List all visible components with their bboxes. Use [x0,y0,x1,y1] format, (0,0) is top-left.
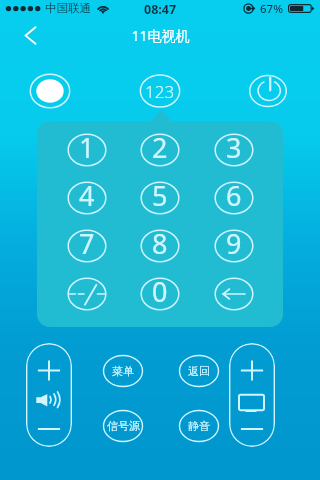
staticText: 08:47 [144,1,177,18]
staticText: 9 [226,226,242,262]
button[interactable]: 1 [64,130,110,170]
button[interactable]: 5 [137,178,183,218]
staticText: 3 [226,130,242,166]
button[interactable]: 7 [64,226,110,266]
button[interactable]: 2 [137,130,183,170]
staticText: 7 [79,226,95,262]
button[interactable]: 3 [211,130,257,170]
staticText: 中国联通 [45,1,91,15]
button[interactable]: Power [246,71,290,111]
button[interactable] [211,274,257,314]
staticText: 0 [152,274,168,310]
button[interactable]: 6 [211,178,257,218]
button[interactable]: 8 [137,226,183,266]
button[interactable]: Volume [26,343,72,447]
staticText: 123 [145,80,175,103]
staticText: 4 [79,178,95,214]
button[interactable]: Channel [229,343,275,447]
staticText: 1 [79,130,95,166]
button[interactable]: 静音 [176,406,222,446]
staticText: 5 [152,178,168,214]
staticText: 8 [152,226,168,262]
staticText: 6 [226,178,242,214]
button[interactable]: 0 [137,274,183,314]
button[interactable]: 信号源 [100,406,146,446]
staticText: 2 [152,130,168,166]
button[interactable] [64,274,110,314]
staticText: 菜单 [112,364,134,378]
button[interactable]: 9 [211,226,257,266]
button[interactable]: Number keypad [136,70,184,112]
button[interactable]: 菜单 [100,351,146,391]
staticText: 返回 [188,364,210,378]
button[interactable]: Record [28,71,72,111]
staticText: 11电视机 [131,26,190,45]
staticText: 信号源 [107,419,140,433]
staticText: 静音 [188,419,210,433]
button[interactable]: 4 [64,178,110,218]
button[interactable]: 返回 [176,351,222,391]
button[interactable]: Back [12,20,50,54]
staticText: 67% [260,1,283,17]
